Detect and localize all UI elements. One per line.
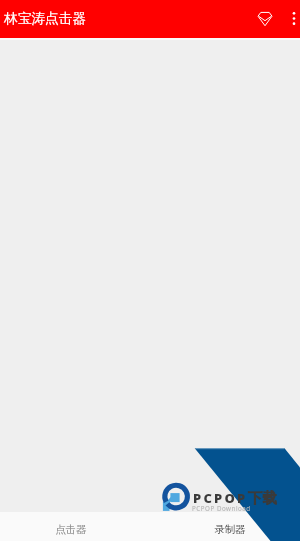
button[interactable]: Premium: [246, 0, 283, 37]
staticText: 录制器: [214, 523, 246, 536]
button[interactable]: 录制器: [159, 512, 300, 541]
staticText: 点击器: [55, 523, 87, 536]
button[interactable]: More options: [284, 0, 300, 37]
staticText: 林宝涛点击器: [4, 10, 87, 27]
staticText: PCPOP Download: [192, 504, 251, 512]
staticText: 下载: [248, 489, 277, 507]
button[interactable]: 点击器: [0, 512, 141, 541]
staticText: PCPOP: [193, 489, 248, 507]
